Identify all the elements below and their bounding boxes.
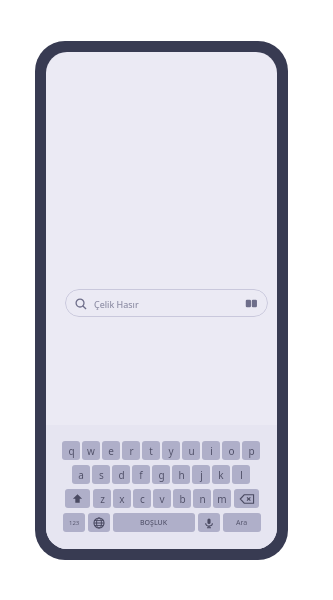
staticText: 123: [69, 519, 80, 527]
staticText: y: [168, 444, 174, 458]
button[interactable]: a: [72, 465, 90, 484]
button[interactable]: z: [93, 489, 111, 508]
button[interactable]: Backspace: [234, 489, 259, 508]
staticText: l: [240, 468, 243, 482]
staticText: i: [210, 444, 213, 458]
staticText: k: [218, 468, 224, 482]
button[interactable]: Numbers: [63, 513, 85, 532]
staticText: d: [118, 468, 125, 482]
staticText: o: [228, 444, 235, 458]
button[interactable]: o: [222, 441, 240, 460]
button[interactable]: h: [172, 465, 190, 484]
staticText: g: [158, 468, 165, 482]
button[interactable]: l: [232, 465, 250, 484]
button[interactable]: x: [113, 489, 131, 508]
button[interactable]: Shift: [65, 489, 90, 508]
button[interactable]: s: [92, 465, 110, 484]
button[interactable]: Voice input: [198, 513, 220, 532]
staticText: Çelik Hasır: [94, 298, 139, 310]
staticText: e: [108, 444, 114, 458]
staticText: q: [68, 444, 75, 458]
staticText: r: [129, 444, 134, 458]
staticText: BOŞLUK: [140, 518, 168, 528]
staticText: c: [140, 492, 145, 506]
staticText: s: [99, 468, 104, 482]
button[interactable]: n: [193, 489, 211, 508]
button[interactable]: u: [182, 441, 200, 460]
button[interactable]: f: [132, 465, 150, 484]
button[interactable]: d: [112, 465, 130, 484]
staticText: b: [179, 492, 186, 506]
staticText: t: [149, 444, 153, 458]
button[interactable]: j: [192, 465, 210, 484]
button[interactable]: b: [173, 489, 191, 508]
staticText: h: [178, 468, 185, 482]
button[interactable]: p: [242, 441, 260, 460]
button[interactable]: e: [102, 441, 120, 460]
staticText: p: [248, 444, 255, 458]
button[interactable]: c: [133, 489, 151, 508]
button[interactable]: w: [82, 441, 100, 460]
button[interactable]: q: [62, 441, 80, 460]
staticText: f: [139, 468, 143, 482]
staticText: j: [200, 468, 203, 482]
button[interactable]: m: [213, 489, 231, 508]
staticText: n: [199, 492, 206, 506]
staticText: u: [188, 444, 195, 458]
button[interactable]: k: [212, 465, 230, 484]
staticText: v: [159, 492, 165, 506]
button[interactable]: v: [153, 489, 171, 508]
button[interactable]: Change language: [88, 513, 110, 532]
staticText: Ara: [236, 518, 248, 528]
button[interactable]: y: [162, 441, 180, 460]
button[interactable]: t: [142, 441, 160, 460]
button[interactable]: r: [122, 441, 140, 460]
staticText: w: [87, 444, 95, 458]
button[interactable]: Ara: [223, 513, 261, 532]
staticText: a: [78, 468, 84, 482]
button[interactable]: g: [152, 465, 170, 484]
staticText: z: [100, 492, 105, 506]
staticText: x: [119, 492, 125, 506]
button[interactable]: BOŞLUK: [113, 513, 195, 532]
button[interactable]: i: [202, 441, 220, 460]
button[interactable]: Çelik Hasır: [65, 289, 268, 317]
staticText: m: [217, 492, 227, 506]
